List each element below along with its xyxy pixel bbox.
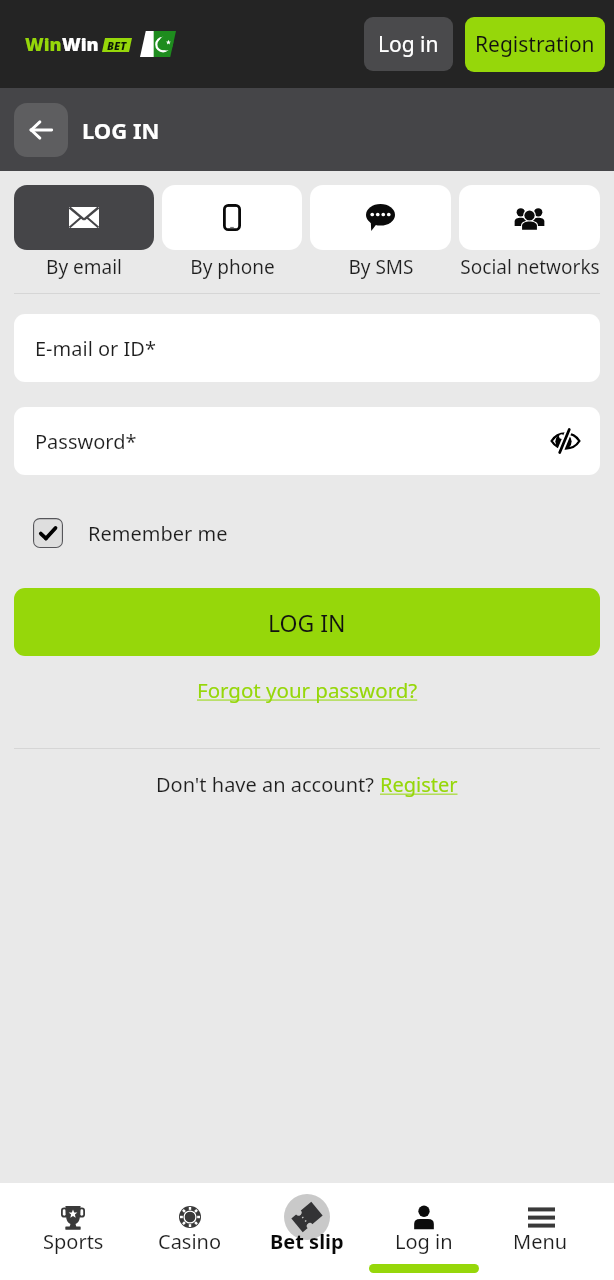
staticText: Casino	[158, 1228, 222, 1255]
button[interactable]: Casino	[131, 1183, 248, 1280]
button[interactable]: Menu	[482, 1183, 599, 1280]
staticText: Sports	[43, 1228, 104, 1255]
button[interactable]: Show password	[547, 423, 583, 459]
staticText: E-mail or ID*	[35, 335, 156, 362]
staticText: Remember me	[88, 520, 228, 547]
staticText: Password*	[35, 428, 137, 455]
button[interactable]: Sports	[15, 1183, 131, 1280]
button[interactable]: By SMS	[310, 185, 451, 280]
staticText: Win	[62, 32, 99, 57]
staticText: Register	[380, 771, 458, 798]
staticText: Win	[25, 32, 62, 57]
button[interactable]: By phone	[162, 185, 302, 280]
staticText: Log in	[378, 30, 439, 59]
button[interactable]: Log in	[364, 17, 453, 71]
button[interactable]: E-mail or ID*	[14, 314, 600, 382]
staticText: Menu	[513, 1228, 568, 1255]
button[interactable]: Forgot your password?	[197, 676, 418, 704]
button[interactable]: Remember me	[33, 518, 614, 548]
button[interactable]: Register	[380, 771, 458, 798]
staticText: BET	[107, 38, 127, 52]
staticText: Social networks	[460, 254, 600, 280]
button[interactable]: Password*	[14, 407, 600, 475]
staticText: Don't have an account?	[156, 771, 380, 798]
button[interactable]: LOG IN	[14, 588, 600, 656]
staticText: LOG IN	[268, 607, 346, 638]
staticText: LOG IN	[82, 115, 160, 145]
staticText: By phone	[190, 254, 275, 280]
staticText: Log in	[395, 1228, 453, 1255]
staticText: Bet slip	[270, 1228, 344, 1255]
staticText: By email	[46, 254, 122, 280]
button[interactable]: Bet slip	[248, 1183, 365, 1280]
button[interactable]: By email	[14, 185, 154, 280]
button[interactable]: Log in	[365, 1183, 482, 1280]
staticText: Registration	[475, 30, 595, 59]
staticText: Forgot your password?	[197, 676, 418, 704]
button[interactable]: Back	[14, 103, 68, 157]
button[interactable]: Social networks	[459, 185, 600, 280]
button[interactable]: Registration	[465, 17, 605, 72]
staticText: By SMS	[348, 254, 414, 280]
